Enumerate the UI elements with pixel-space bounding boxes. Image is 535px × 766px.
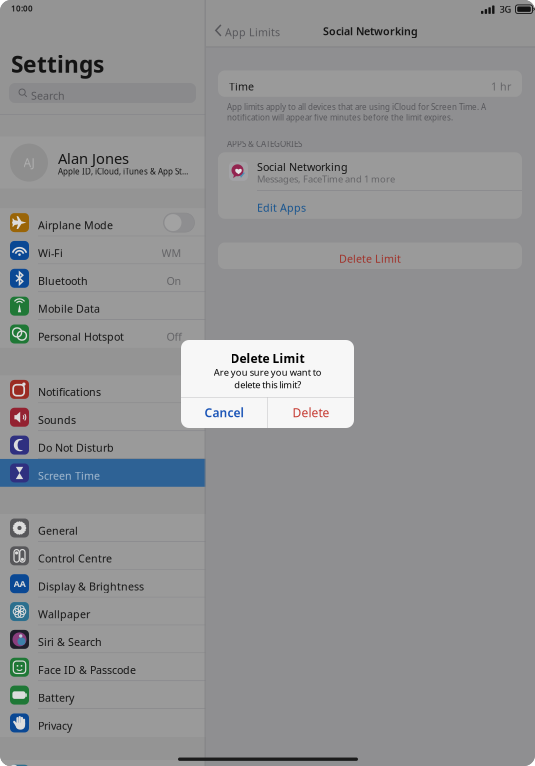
button[interactable]: Time [218, 70, 522, 97]
staticText: Time [229, 79, 254, 94]
button[interactable]: AJ [0, 137, 205, 189]
button[interactable]: Notifications [0, 375, 205, 403]
staticText: Delete Limit [230, 350, 304, 366]
staticText: Social Networking [257, 160, 348, 174]
staticText: Battery [38, 691, 74, 705]
staticText: Settings [11, 49, 104, 79]
button[interactable]: App Store [0, 760, 205, 766]
button[interactable]: General [0, 514, 205, 542]
staticText: Screen Time [38, 468, 100, 483]
staticText: Wallpaper [38, 607, 90, 621]
staticText: Search [31, 88, 65, 103]
button[interactable]: Do Not Disturb [0, 431, 205, 459]
button[interactable]: Wallpaper [0, 597, 205, 625]
button[interactable]: Battery [0, 681, 205, 709]
staticText: Privacy [38, 718, 72, 733]
staticText: Mobile Data [38, 302, 100, 316]
staticText: General [38, 523, 78, 538]
button[interactable]: Delete Limit [218, 242, 522, 269]
staticText: Are you sure you want to delete this lim… [213, 366, 321, 391]
staticText: APPS & CATEGORIES [227, 138, 302, 149]
staticText: Messages, FaceTime and 1 more [257, 173, 395, 185]
button[interactable]: Screen Time [0, 459, 205, 487]
button[interactable]: AA [0, 570, 205, 598]
staticText: Sounds [38, 413, 76, 427]
button[interactable]: Sounds [0, 403, 205, 431]
button[interactable]: Mobile Data [0, 292, 205, 320]
staticText: Off [166, 329, 181, 344]
staticText: Siri & Search [38, 635, 102, 649]
staticText: 1 hr [491, 79, 511, 94]
button[interactable]: Cancel [181, 397, 267, 428]
staticText: AJ [23, 155, 34, 170]
button[interactable]: Personal Hotspot [0, 320, 205, 348]
button[interactable]: Wi-Fi [0, 236, 205, 264]
staticText: Do Not Disturb [38, 441, 114, 455]
staticText: Personal Hotspot [38, 329, 124, 344]
staticText: Apple ID, iCloud, iTunes & App St… [58, 166, 188, 177]
staticText: AA [13, 577, 25, 590]
staticText: Control Centre [38, 551, 112, 566]
staticText: Edit Apps [257, 200, 306, 215]
staticText: App Limits [225, 25, 280, 39]
button[interactable]: Control Centre [0, 542, 205, 570]
button[interactable]: Bluetooth [0, 264, 205, 292]
staticText: Display & Brightness [38, 579, 144, 593]
button[interactable]: Privacy [0, 709, 205, 737]
button[interactable]: Edit Apps [218, 191, 522, 219]
staticText: Airplane Mode [38, 218, 113, 232]
staticText: 3G [499, 3, 511, 15]
staticText: Notifications [38, 385, 101, 399]
staticText: Wi-Fi [38, 246, 63, 260]
button[interactable]: Face ID & Passcode [0, 653, 205, 681]
button[interactable]: Siri & Search [0, 625, 205, 653]
staticText: Bluetooth [38, 274, 88, 288]
button[interactable]: Social Networking [218, 152, 522, 190]
button[interactable]: App Limits [213, 18, 281, 42]
staticText: Cancel [205, 404, 244, 420]
staticText: WM [161, 246, 181, 260]
staticText: On [166, 274, 181, 288]
button[interactable]: Airplane Mode [0, 209, 205, 236]
staticText: Delete [292, 404, 329, 420]
staticText: Face ID & Passcode [38, 663, 136, 677]
staticText: 10:00 [11, 3, 33, 14]
staticText: Delete Limit [339, 251, 401, 266]
button[interactable]: Delete [268, 397, 354, 428]
staticText: App limits apply to all devices that are… [227, 101, 486, 123]
staticText: Social Networking [323, 24, 418, 38]
staticText: Alan Jones [58, 149, 129, 168]
